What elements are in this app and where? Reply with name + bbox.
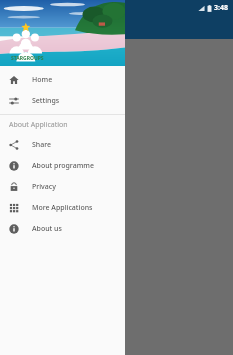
button[interactable]: About us bbox=[0, 218, 125, 239]
staticText: About us bbox=[32, 224, 62, 234]
staticText: Privacy bbox=[32, 182, 56, 192]
button[interactable]: Privacy bbox=[0, 176, 125, 197]
staticText: More Applications bbox=[32, 203, 93, 213]
staticText: Settings bbox=[32, 96, 60, 106]
button[interactable]: About programme bbox=[0, 155, 125, 176]
staticText: 3:48 bbox=[214, 3, 228, 13]
staticText: Home bbox=[32, 75, 53, 85]
staticText: About programme bbox=[32, 161, 94, 171]
button[interactable]: Home bbox=[0, 69, 125, 90]
staticText: About Application bbox=[9, 120, 68, 130]
staticText: STARGROUPS bbox=[11, 55, 44, 62]
button[interactable]: Settings bbox=[0, 90, 125, 111]
button[interactable]: More Applications bbox=[0, 197, 125, 218]
staticText: Share bbox=[32, 140, 52, 150]
button[interactable]: Share bbox=[0, 134, 125, 155]
